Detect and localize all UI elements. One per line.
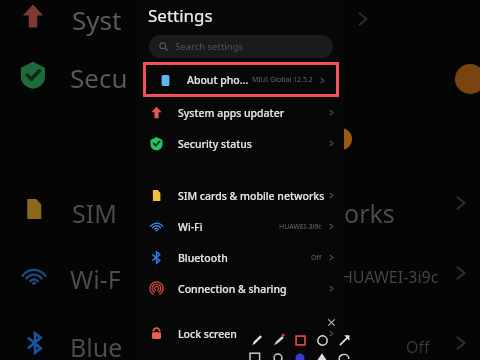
- other: Wi-Fi: [149, 219, 164, 234]
- other: Bluetooth: [149, 250, 164, 265]
- staticText: HUAWEI-3i9c: [279, 222, 322, 232]
- staticText: Security status: [178, 137, 327, 151]
- staticText: Connection & sharing: [178, 282, 327, 296]
- staticText: Lock screen: [178, 327, 327, 341]
- button[interactable]: Pen: [250, 334, 263, 347]
- staticText: HUAWEI-3i9c: [341, 266, 439, 288]
- button[interactable]: Bluetooth: [138, 242, 344, 273]
- staticText: Syst: [72, 2, 122, 37]
- button[interactable]: Security status: [138, 128, 344, 159]
- button[interactable]: Marker: [272, 334, 285, 347]
- button[interactable]: SIM cards: [138, 180, 344, 211]
- button[interactable]: Search: [149, 35, 333, 58]
- staticText: Blue: [70, 330, 123, 360]
- button[interactable]: System apps updater: [138, 97, 344, 128]
- other: SIM cards: [149, 188, 164, 203]
- other: About phone: [158, 73, 173, 88]
- button[interactable]: Wi-Fi: [138, 211, 344, 242]
- button[interactable]: About phone: [147, 67, 335, 93]
- button[interactable]: Lock screen: [138, 318, 344, 349]
- staticText: Settings: [148, 4, 213, 27]
- staticText: orks: [344, 196, 395, 230]
- other: Connection and sharing: [149, 281, 164, 296]
- other: Lock screen: [149, 326, 164, 341]
- other: Security status: [149, 136, 164, 151]
- staticText: System apps updater: [178, 106, 327, 120]
- button[interactable]: Rectangle: [294, 334, 307, 347]
- staticText: Off: [406, 336, 430, 358]
- staticText: About phone: [187, 73, 252, 87]
- staticText: Secu: [70, 60, 128, 95]
- staticText: MIUI Global 12.5.2: [252, 75, 313, 85]
- staticText: Search settings: [175, 40, 244, 53]
- button[interactable]: Connection and sharing: [138, 273, 344, 304]
- staticText: SIM cards & mobile networks: [178, 189, 327, 203]
- other: Search: [159, 42, 168, 51]
- other: System apps updater: [149, 105, 164, 120]
- staticText: Off: [311, 253, 322, 263]
- staticText: SIM: [72, 196, 117, 230]
- button[interactable]: Close: [327, 318, 336, 327]
- staticText: Wi-F: [70, 262, 121, 296]
- staticText: Bluetooth: [178, 251, 311, 265]
- button[interactable]: Ellipse: [316, 334, 329, 347]
- staticText: Wi-Fi: [178, 220, 279, 234]
- button[interactable]: Arrow: [338, 334, 351, 347]
